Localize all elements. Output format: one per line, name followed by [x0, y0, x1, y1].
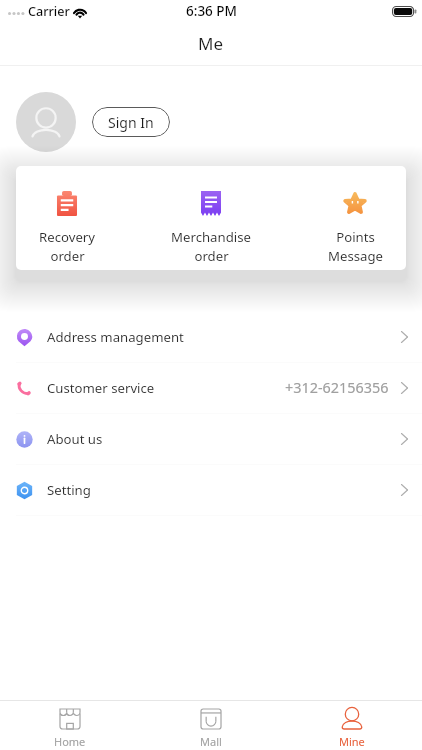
staticText: +312-62156356	[285, 378, 389, 398]
staticText: Setting	[47, 481, 91, 499]
staticText: Recovery	[39, 228, 95, 246]
staticText: order	[194, 247, 229, 265]
button[interactable]: Recovery	[16, 166, 118, 270]
staticText: Home	[54, 734, 86, 749]
button[interactable]: Mine	[281, 701, 422, 750]
button[interactable]: Merchandise	[160, 166, 262, 270]
button[interactable]: Address management	[0, 312, 422, 363]
button[interactable]: Mall	[140, 701, 281, 750]
staticText: order	[50, 247, 85, 265]
staticText: Message	[328, 247, 383, 265]
button[interactable]: About us	[0, 414, 422, 465]
button[interactable]: Home	[0, 701, 140, 750]
staticText: Carrier	[28, 3, 70, 20]
button[interactable]: Sign In	[92, 107, 170, 137]
button[interactable]: Setting	[0, 465, 422, 516]
button[interactable]: Customer service	[0, 363, 422, 414]
staticText: Customer service	[47, 379, 155, 397]
button[interactable]: Profile avatar	[16, 92, 76, 152]
staticText: Mall	[200, 734, 222, 749]
staticText: Me	[198, 32, 224, 55]
staticText: Address management	[47, 328, 184, 346]
staticText: 6:36 PM	[186, 2, 237, 20]
staticText: Sign In	[108, 113, 154, 132]
staticText: Points	[336, 228, 375, 246]
staticText: Mine	[339, 734, 365, 749]
button[interactable]: Points	[304, 166, 406, 270]
staticText: Merchandise	[171, 228, 251, 246]
staticText: About us	[47, 430, 103, 448]
